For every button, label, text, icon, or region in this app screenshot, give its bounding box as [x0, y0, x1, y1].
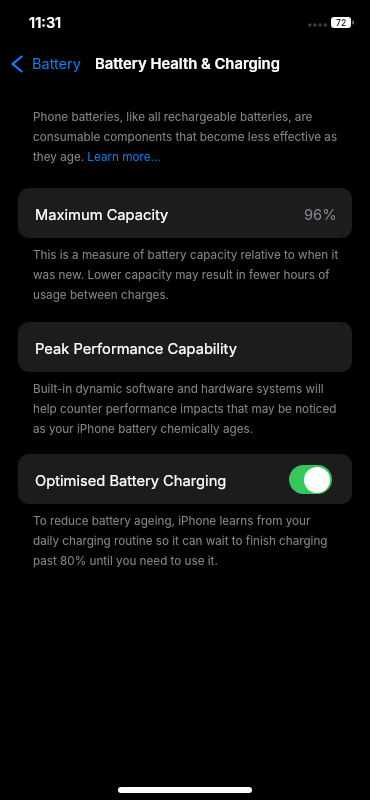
button[interactable]: Maximum Capacity: [18, 188, 352, 238]
staticText: Optimised Battery Charging: [35, 472, 227, 490]
staticText: 11:31: [29, 14, 62, 32]
button[interactable]: Optimised Battery Charging: [18, 454, 352, 504]
staticText: Peak Performance Capability: [35, 340, 237, 358]
staticText: Phone batteries, like all rechargeable b…: [33, 110, 338, 164]
staticText: Maximum Capacity: [35, 206, 169, 224]
button[interactable]: Peak Performance Capability: [18, 322, 352, 372]
staticText: To reduce battery ageing, iPhone learns …: [33, 514, 328, 568]
staticText: 72: [336, 18, 347, 28]
staticText: This is a measure of battery capacity re…: [33, 248, 339, 302]
button[interactable]: Optimised Battery Charging toggle: [289, 465, 332, 494]
staticText: Battery: [32, 55, 81, 73]
button[interactable]: Battery: [6, 51, 86, 77]
staticText: Built-in dynamic software and hardware s…: [33, 382, 337, 436]
staticText: 96%: [304, 206, 337, 224]
staticText: Battery Health & Charging: [95, 55, 280, 73]
button[interactable]: Learn more: [88, 148, 160, 164]
